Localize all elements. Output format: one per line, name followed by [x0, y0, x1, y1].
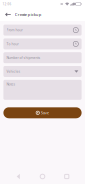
staticText: Notes	[7, 82, 16, 86]
button[interactable]: Number of shipments	[3, 52, 82, 63]
staticText: Number of shipments	[7, 55, 41, 60]
button[interactable]: Back	[12, 170, 24, 182]
button[interactable]: Home	[36, 170, 48, 182]
staticText: To hour	[7, 42, 19, 46]
button[interactable]: Recents	[61, 170, 73, 182]
button[interactable]: To hour	[3, 38, 82, 49]
button[interactable]: Notes	[3, 80, 82, 100]
staticText: Save	[41, 110, 49, 115]
staticText: 12:06	[2, 2, 11, 6]
button[interactable]: From hour	[3, 25, 82, 36]
staticText: From hour	[7, 28, 23, 32]
staticText: Vehicles	[7, 69, 21, 74]
button[interactable]: Back	[1, 8, 15, 21]
button[interactable]: Vehicles	[3, 66, 82, 77]
button[interactable]: Save	[3, 107, 82, 118]
staticText: Create pickup	[15, 12, 42, 17]
